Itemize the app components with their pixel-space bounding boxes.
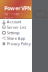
- staticText: Privacy Policy: [7, 41, 31, 46]
- button[interactable]: Share App: [0, 35, 32, 41]
- staticText: Power VPN: [4, 5, 31, 12]
- staticText: Account: [7, 19, 21, 24]
- staticText: Server List: [7, 25, 26, 30]
- staticText: Fast • Private • Secure: [4, 12, 22, 19]
- button[interactable]: Settings: [0, 30, 32, 35]
- button[interactable]: Privacy Policy: [0, 41, 32, 46]
- staticText: Share App: [7, 36, 25, 41]
- button[interactable]: Account: [0, 19, 32, 24]
- button[interactable]: Server List: [0, 24, 32, 30]
- staticText: Settings: [7, 30, 20, 35]
